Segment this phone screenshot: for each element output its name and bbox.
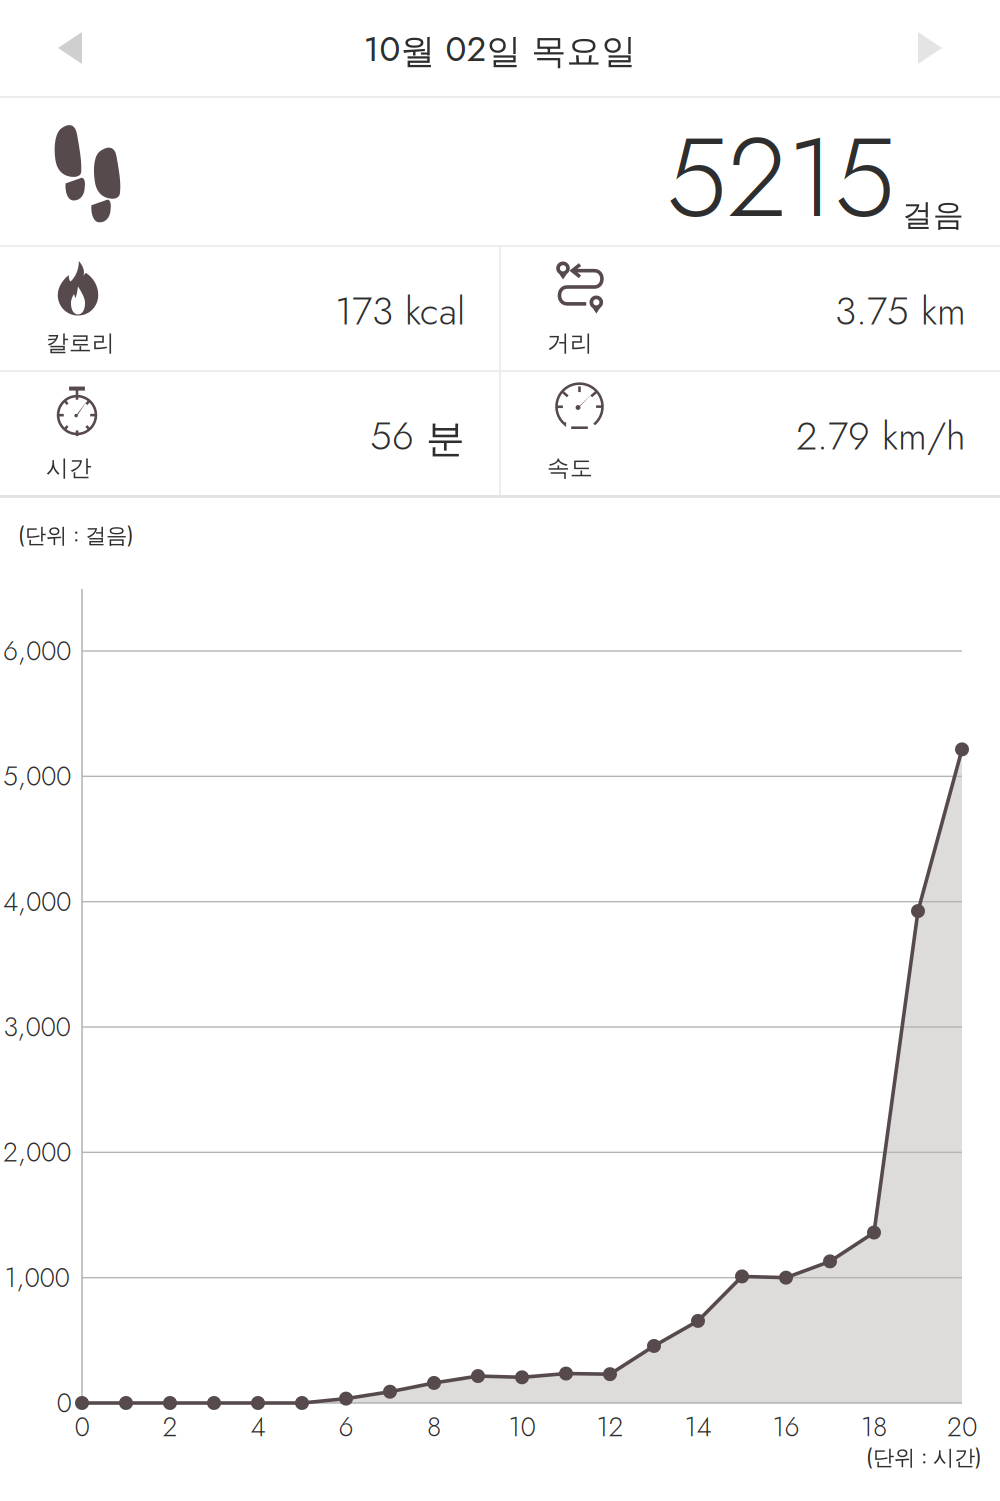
button[interactable]: 시간 bbox=[0, 372, 499, 495]
staticText: 거리 bbox=[547, 329, 593, 357]
staticText: 14 bbox=[684, 1408, 711, 1446]
staticText: 칼로리 bbox=[46, 329, 115, 357]
staticText: 12 bbox=[596, 1408, 623, 1446]
button[interactable]: Previous day bbox=[0, 0, 140, 96]
button[interactable]: 칼로리 bbox=[0, 247, 499, 370]
staticText: 3,000 bbox=[3, 1008, 70, 1046]
button[interactable]: 거리 bbox=[501, 247, 1000, 370]
button[interactable]: Next day bbox=[860, 0, 1000, 96]
staticText: 16 bbox=[772, 1408, 799, 1446]
staticText: 4,000 bbox=[3, 882, 71, 921]
staticText: 2.79 km/h bbox=[796, 408, 966, 464]
staticText: 8 bbox=[427, 1408, 441, 1446]
staticText: 10월 02일 목요일 bbox=[363, 24, 636, 74]
staticText: (단위 : 걸음) bbox=[18, 519, 134, 549]
staticText: 6,000 bbox=[3, 632, 71, 670]
staticText: 걸음 bbox=[902, 196, 964, 234]
staticText: 2 bbox=[162, 1408, 177, 1446]
staticText: 20 bbox=[947, 1408, 977, 1446]
button[interactable]: 속도 bbox=[501, 372, 1000, 495]
staticText: 5,000 bbox=[3, 757, 71, 796]
staticText: (단위 : 시간) bbox=[866, 1441, 982, 1471]
staticText: 173 kcal bbox=[335, 283, 465, 339]
staticText: 0 bbox=[56, 1384, 71, 1422]
staticText: 10 bbox=[508, 1408, 535, 1446]
staticText: 18 bbox=[861, 1408, 887, 1446]
staticText: 6 bbox=[338, 1408, 353, 1446]
staticText: 5215 bbox=[666, 99, 895, 257]
staticText: 0 bbox=[74, 1408, 89, 1446]
staticText: 시간 bbox=[46, 454, 92, 482]
staticText: 3.75 km bbox=[835, 283, 966, 339]
staticText: 1,000 bbox=[4, 1258, 69, 1297]
staticText: 56 분 bbox=[370, 408, 465, 464]
staticText: 2,000 bbox=[3, 1133, 71, 1172]
staticText: 속도 bbox=[547, 454, 593, 482]
staticText: 4 bbox=[250, 1408, 265, 1446]
